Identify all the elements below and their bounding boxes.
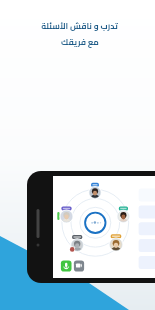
- staticText: تدرب و ناقش الأسئلة: [41, 18, 118, 34]
- button[interactable]: [53, 176, 155, 278]
- staticText: مع فريقك: [61, 34, 99, 50]
